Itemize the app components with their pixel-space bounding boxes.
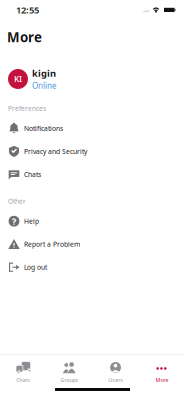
button[interactable]: Log out <box>0 256 185 279</box>
button[interactable]: Privacy and Security <box>0 140 185 163</box>
staticText: Privacy and Security <box>24 147 87 156</box>
staticText: Report a Problem <box>24 240 80 249</box>
button[interactable]: Users <box>92 361 139 384</box>
staticText: Other <box>8 197 26 206</box>
staticText: Log out <box>24 263 47 272</box>
staticText: More <box>7 28 42 46</box>
staticText: Notifications <box>24 124 63 133</box>
button[interactable]: Chats <box>0 163 185 186</box>
button[interactable]: KI <box>0 66 185 92</box>
staticText: Online <box>32 80 57 91</box>
staticText: 12:55 <box>16 4 39 16</box>
staticText: KI <box>14 74 22 84</box>
staticText: Users <box>108 376 123 384</box>
staticText: Chats <box>16 376 30 384</box>
staticText: Help <box>24 217 39 226</box>
button[interactable]: Notifications <box>0 117 185 140</box>
staticText: Chats <box>24 170 41 179</box>
staticText: Preferences <box>8 104 46 113</box>
button[interactable]: Report a Problem <box>0 233 185 256</box>
staticText: kigin <box>32 67 56 79</box>
button[interactable]: Groups <box>46 361 92 384</box>
button[interactable]: Chats <box>0 361 46 384</box>
staticText: More <box>155 376 168 384</box>
button[interactable]: More <box>139 361 185 384</box>
staticText: Groups <box>60 376 78 384</box>
button[interactable]: Help <box>0 210 185 233</box>
